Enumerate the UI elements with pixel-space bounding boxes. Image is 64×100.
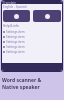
staticText: Settings item — [6, 40, 25, 44]
staticText: Native speaker — [2, 84, 40, 91]
button[interactable]: Settings item — [2, 39, 62, 44]
button[interactable]: Voice — [33, 10, 61, 22]
staticText: English - Spanish — [3, 5, 27, 9]
button[interactable]: Settings item — [2, 49, 62, 54]
staticText: Settings item — [6, 50, 25, 54]
staticText: Word scanner & — [2, 77, 42, 84]
button[interactable]: Translate — [2, 1, 62, 4]
staticText: Settings item — [6, 30, 25, 34]
button[interactable]: Settings item — [2, 44, 62, 49]
staticText: Help & info — [3, 24, 19, 28]
staticText: Settings item — [6, 45, 25, 49]
button[interactable]: Settings item — [2, 34, 62, 39]
staticText: Settings item — [6, 35, 25, 39]
button[interactable]: English - Spanish — [2, 4, 62, 10]
button[interactable]: Camera — [3, 10, 30, 22]
button[interactable]: Settings item — [2, 29, 62, 34]
staticText: Translate — [3, 1, 16, 4]
